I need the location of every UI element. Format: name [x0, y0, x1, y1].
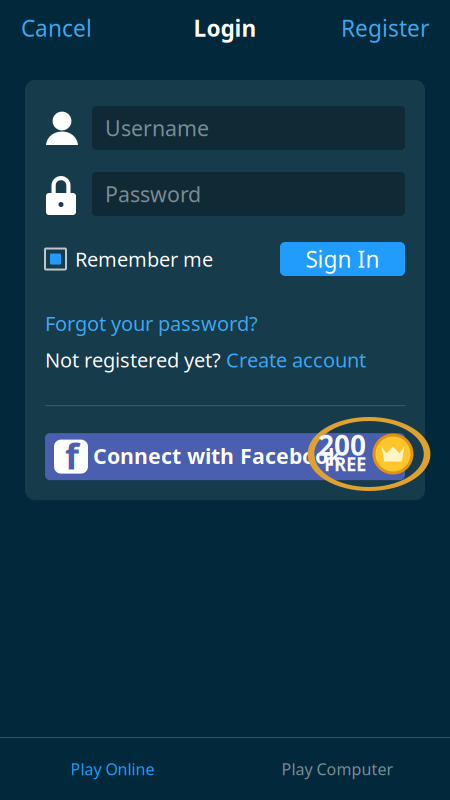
- staticText: Connect with Facebook: [93, 441, 341, 470]
- staticText: Forgot your password?: [45, 310, 258, 337]
- button[interactable]: Play Computer: [225, 758, 450, 780]
- staticText: Play Computer: [281, 758, 393, 780]
- staticText: Not registered yet?: [45, 347, 226, 373]
- button[interactable]: Cancel: [17, 5, 96, 51]
- button[interactable]: Sign In: [280, 242, 405, 276]
- button[interactable]: Forgot your password?: [45, 310, 405, 337]
- staticText: Register: [341, 13, 429, 43]
- button[interactable]: f: [45, 433, 405, 480]
- staticText: 200: [318, 426, 366, 464]
- staticText: Username: [105, 114, 209, 142]
- button[interactable]: Create account: [226, 347, 366, 373]
- staticText: Sign In: [305, 244, 379, 274]
- staticText: Play Online: [70, 758, 154, 780]
- staticText: Remember me: [75, 246, 213, 272]
- staticText: Login: [193, 13, 256, 43]
- button[interactable]: Play Online: [0, 758, 225, 780]
- staticText: Password: [105, 180, 201, 208]
- staticText: f: [65, 432, 79, 479]
- button[interactable]: Remember me: [45, 242, 213, 276]
- button[interactable]: Register: [337, 5, 433, 51]
- staticText: Create account: [226, 347, 366, 373]
- staticText: FREE: [324, 452, 366, 476]
- staticText: Cancel: [21, 13, 92, 43]
